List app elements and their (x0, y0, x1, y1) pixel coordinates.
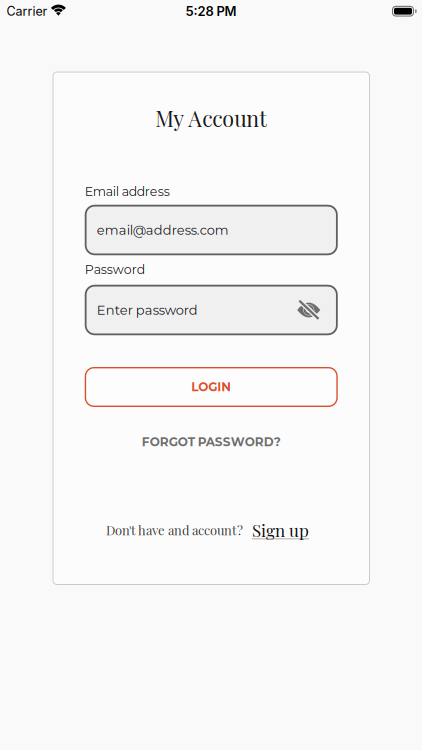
staticText: Carrier (6, 4, 47, 19)
staticText: Enter password (97, 302, 198, 318)
button[interactable]: LOGIN (85, 367, 338, 407)
staticText: Sign up (252, 519, 309, 541)
staticText: Don't have and account? (106, 521, 243, 539)
button[interactable]: Show password (296, 299, 322, 321)
button[interactable]: FORGOT PASSWORD? (142, 435, 281, 449)
staticText: email@address.com (97, 222, 229, 238)
staticText: Email address (85, 184, 170, 199)
staticText: My Account (155, 104, 267, 132)
staticText: Password (85, 262, 145, 277)
button[interactable]: Sign up (252, 519, 309, 541)
button[interactable]: Enter password (85, 285, 338, 335)
staticText: FORGOT PASSWORD? (142, 435, 281, 449)
staticText: 5:28 PM (185, 3, 236, 19)
staticText: LOGIN (191, 380, 231, 394)
button[interactable]: email@address.com (85, 205, 338, 255)
